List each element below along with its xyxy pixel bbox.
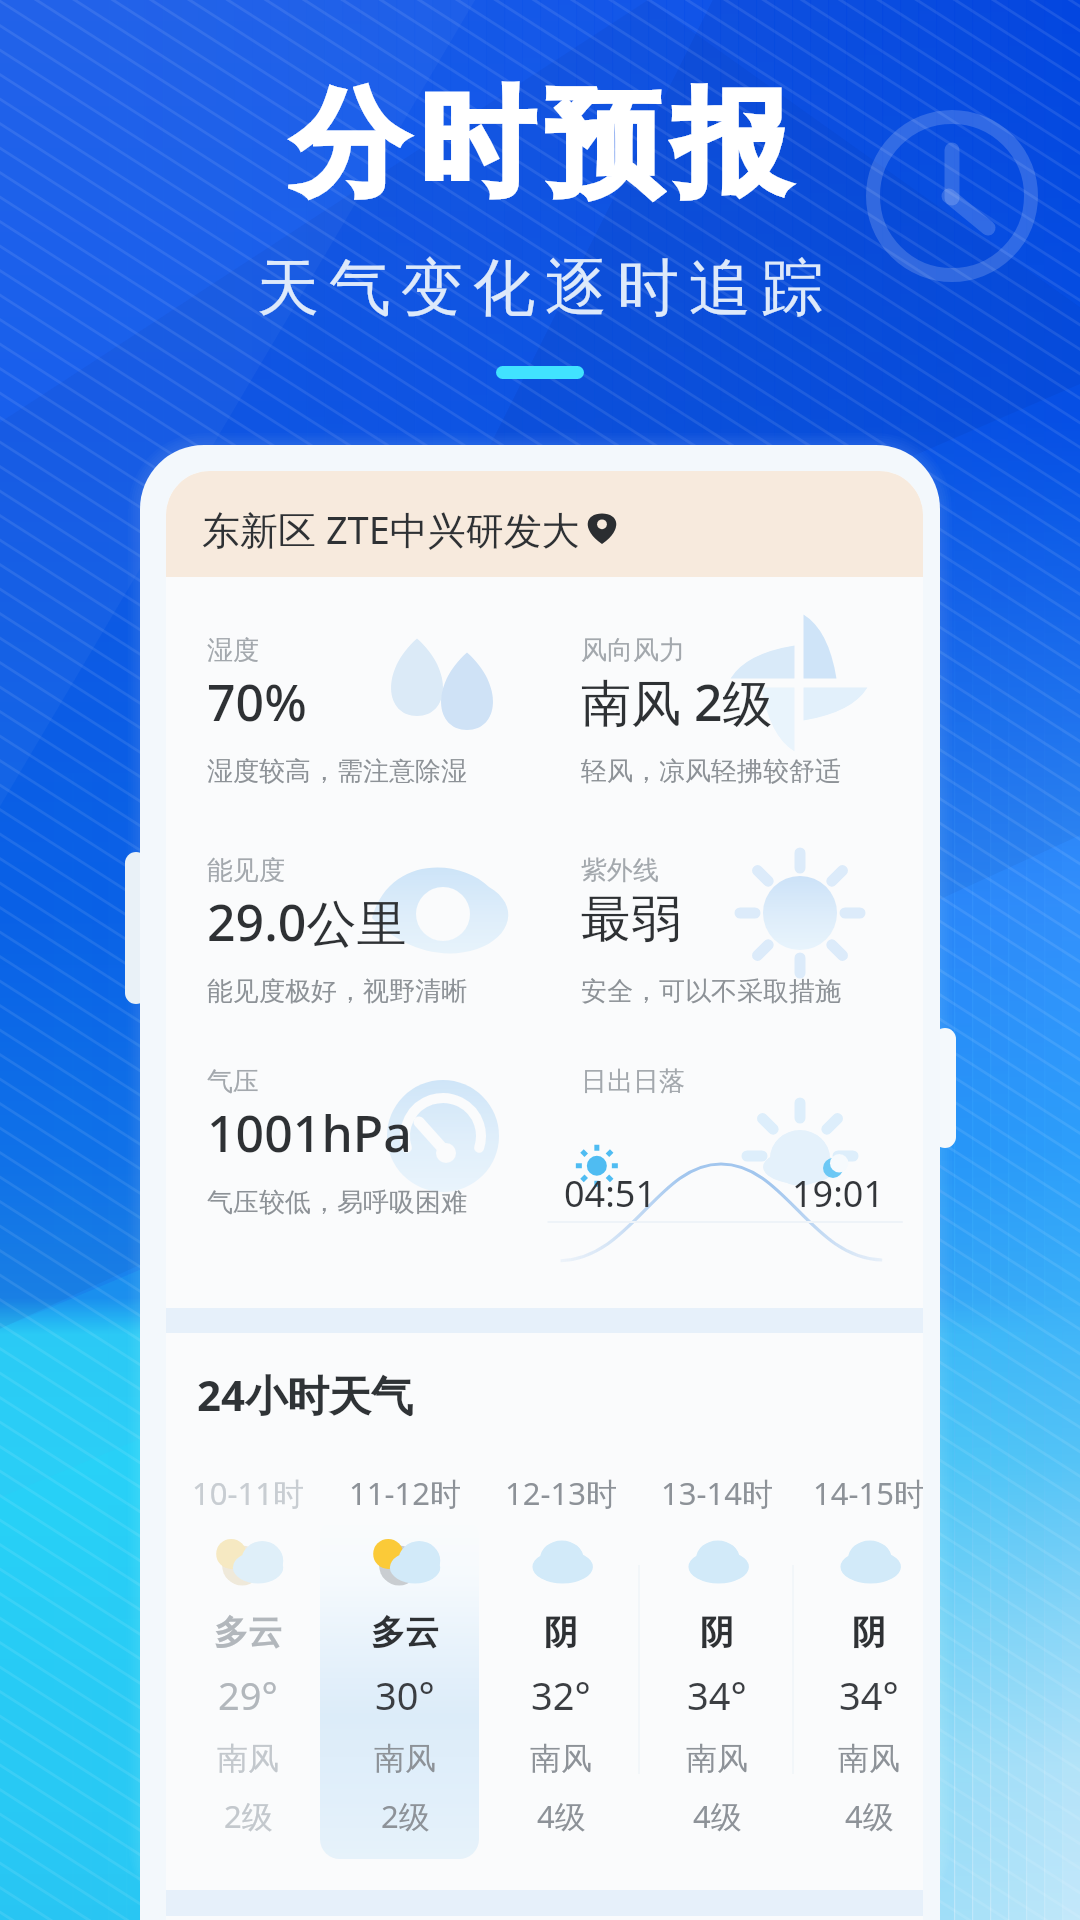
- staticText: 阴: [700, 1611, 734, 1654]
- staticText: 气压较低，易呼吸困难: [207, 1186, 467, 1219]
- staticText: 4级: [693, 1795, 742, 1837]
- staticText: 阴: [852, 1611, 886, 1654]
- staticText: 14-15时: [813, 1472, 923, 1514]
- button[interactable]: 10-11时: [170, 1466, 326, 1866]
- staticText: 天气变化逐时追踪: [252, 249, 828, 327]
- staticText: 东新区 ZTE中兴研发大: [202, 503, 580, 555]
- button[interactable]: 14-15时: [791, 1466, 923, 1866]
- staticText: 24小时天气: [197, 1366, 414, 1423]
- staticText: 4级: [845, 1795, 894, 1837]
- staticText: 南风 2级: [581, 668, 773, 736]
- button[interactable]: 紫外线: [540, 811, 914, 1023]
- staticText: 气压: [207, 1065, 259, 1098]
- staticText: 4级: [537, 1795, 586, 1837]
- staticText: 南风: [530, 1739, 592, 1778]
- staticText: 南风: [838, 1739, 900, 1778]
- staticText: 34°: [839, 1669, 899, 1721]
- button[interactable]: 东新区 ZTE中兴研发大: [166, 471, 923, 577]
- staticText: 能见度: [207, 854, 285, 887]
- staticText: 29.0公里: [207, 888, 407, 956]
- staticText: 阴: [544, 1611, 578, 1654]
- staticText: 04:51: [564, 1169, 657, 1218]
- staticText: 多云: [371, 1611, 439, 1654]
- button[interactable]: 日出日落: [540, 1022, 914, 1272]
- staticText: 30°: [375, 1669, 435, 1721]
- staticText: 10-11时: [192, 1472, 304, 1514]
- staticText: 2级: [381, 1795, 430, 1837]
- staticText: 轻风，凉风轻拂较舒适: [581, 755, 841, 788]
- button[interactable]: 12-13时: [483, 1466, 639, 1866]
- staticText: 11-12时: [349, 1472, 461, 1514]
- staticText: 1001hPa: [207, 1099, 412, 1167]
- staticText: 日出日落: [581, 1065, 685, 1098]
- button[interactable]: 11-12时: [327, 1466, 483, 1866]
- staticText: 29°: [218, 1669, 278, 1721]
- staticText: 紫外线: [581, 854, 659, 887]
- staticText: 安全，可以不采取措施: [581, 975, 841, 1008]
- staticText: 19:01: [792, 1169, 885, 1218]
- button[interactable]: 气压: [166, 1022, 540, 1234]
- button[interactable]: 13-14时: [639, 1466, 795, 1866]
- staticText: 分时预报: [286, 72, 794, 217]
- staticText: 32°: [531, 1669, 591, 1721]
- staticText: 风向风力: [581, 634, 685, 667]
- staticText: 湿度: [207, 634, 259, 667]
- button[interactable]: 能见度: [166, 811, 540, 1023]
- staticText: 南风: [686, 1739, 748, 1778]
- staticText: 能见度极好，视野清晰: [207, 975, 467, 1008]
- staticText: 2级: [224, 1795, 273, 1837]
- button[interactable]: 湿度: [166, 591, 540, 803]
- staticText: 12-13时: [505, 1472, 617, 1514]
- button[interactable]: 风向风力: [540, 591, 914, 803]
- staticText: 多云: [214, 1611, 282, 1654]
- staticText: 70%: [207, 668, 307, 736]
- staticText: 13-14时: [661, 1472, 773, 1514]
- staticText: 34°: [687, 1669, 747, 1721]
- staticText: 南风: [374, 1739, 436, 1778]
- staticText: 湿度较高，需注意除湿: [207, 755, 467, 788]
- staticText: 南风: [217, 1739, 279, 1778]
- staticText: 最弱: [581, 888, 681, 951]
